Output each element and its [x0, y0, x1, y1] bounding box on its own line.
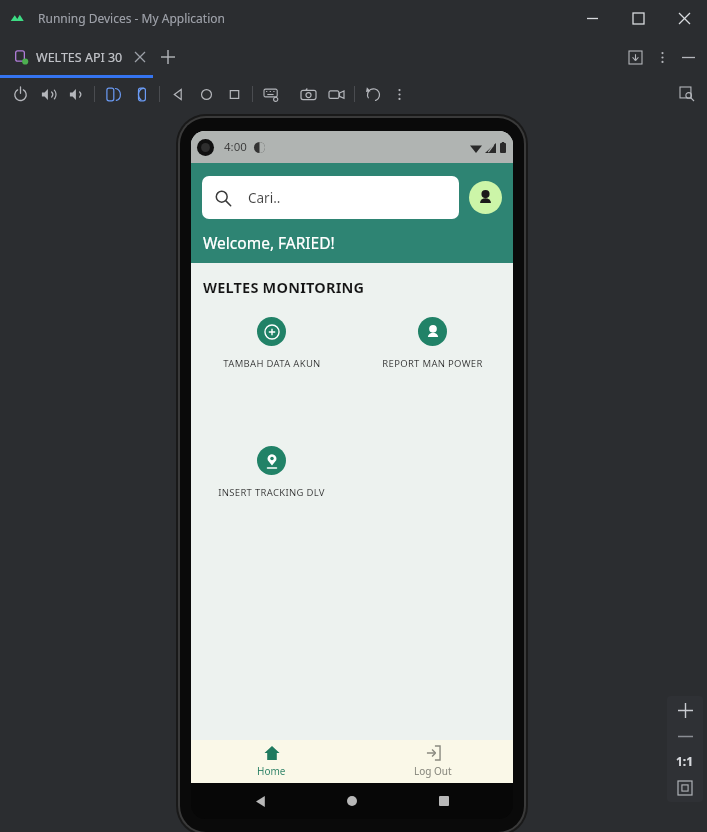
button[interactable]: Recent apps: [422, 783, 466, 819]
button[interactable]: Rotate left: [99, 80, 127, 108]
button[interactable]: Zoom out: [667, 724, 703, 748]
button[interactable]: History: [359, 80, 387, 108]
staticText: Home: [257, 764, 286, 778]
staticText: Cari..: [248, 189, 281, 207]
button[interactable]: Home: [330, 783, 374, 819]
button[interactable]: max: [615, 0, 661, 36]
button[interactable]: WELTES API 30: [14, 36, 145, 78]
button[interactable]: Profile: [469, 181, 502, 214]
staticText: 1:1: [676, 753, 694, 769]
button[interactable]: TAMBAH DATA AKUN: [191, 315, 352, 372]
button[interactable]: More options: [649, 44, 675, 70]
other: Close tab: [135, 52, 145, 62]
button[interactable]: Hide: [675, 44, 701, 70]
staticText: INSERT TRACKING DLV: [218, 486, 325, 499]
button[interactable]: Volume up: [34, 80, 62, 108]
button[interactable]: Back: [239, 783, 283, 819]
button[interactable]: Volume down: [62, 80, 90, 108]
button[interactable]: Overview: [220, 80, 248, 108]
button[interactable]: Screenshot: [294, 80, 322, 108]
button[interactable]: Dock: [621, 43, 649, 71]
button[interactable]: REPORT MAN POWER: [352, 315, 513, 372]
button[interactable]: Keyboard: [257, 80, 285, 108]
other: max: [633, 13, 644, 24]
button[interactable]: Search: [202, 176, 459, 219]
staticText: Running Devices - My Application: [38, 10, 225, 26]
staticText: 4:00: [224, 139, 247, 155]
staticText: TAMBAH DATA AKUN: [223, 357, 321, 370]
staticText: WELTES API 30: [36, 49, 123, 66]
button[interactable]: Record screen: [322, 80, 350, 108]
staticText: REPORT MAN POWER: [382, 357, 483, 370]
button[interactable]: Home: [191, 740, 352, 783]
button[interactable]: 1:1: [667, 748, 703, 774]
button[interactable]: Log Out: [352, 740, 513, 783]
other: Search: [215, 190, 231, 206]
button[interactable]: close: [661, 0, 707, 36]
staticText: Log Out: [414, 764, 452, 778]
button[interactable]: More: [387, 82, 411, 106]
button[interactable]: min: [569, 0, 615, 36]
other: close: [679, 13, 690, 24]
button[interactable]: Home: [192, 80, 220, 108]
button[interactable]: Fit to screen: [667, 774, 703, 802]
other: min: [587, 13, 598, 24]
button[interactable]: Power: [6, 80, 34, 108]
button[interactable]: Zoom in: [667, 696, 703, 724]
staticText: Welcome, FARIED!: [203, 232, 335, 253]
button[interactable]: Rotate right: [127, 80, 155, 108]
staticText: WELTES MONITORING: [203, 277, 365, 297]
button[interactable]: New tab: [151, 40, 185, 74]
button[interactable]: Back: [164, 80, 192, 108]
button[interactable]: Inspect: [675, 82, 699, 106]
button[interactable]: INSERT TRACKING DLV: [191, 444, 352, 501]
